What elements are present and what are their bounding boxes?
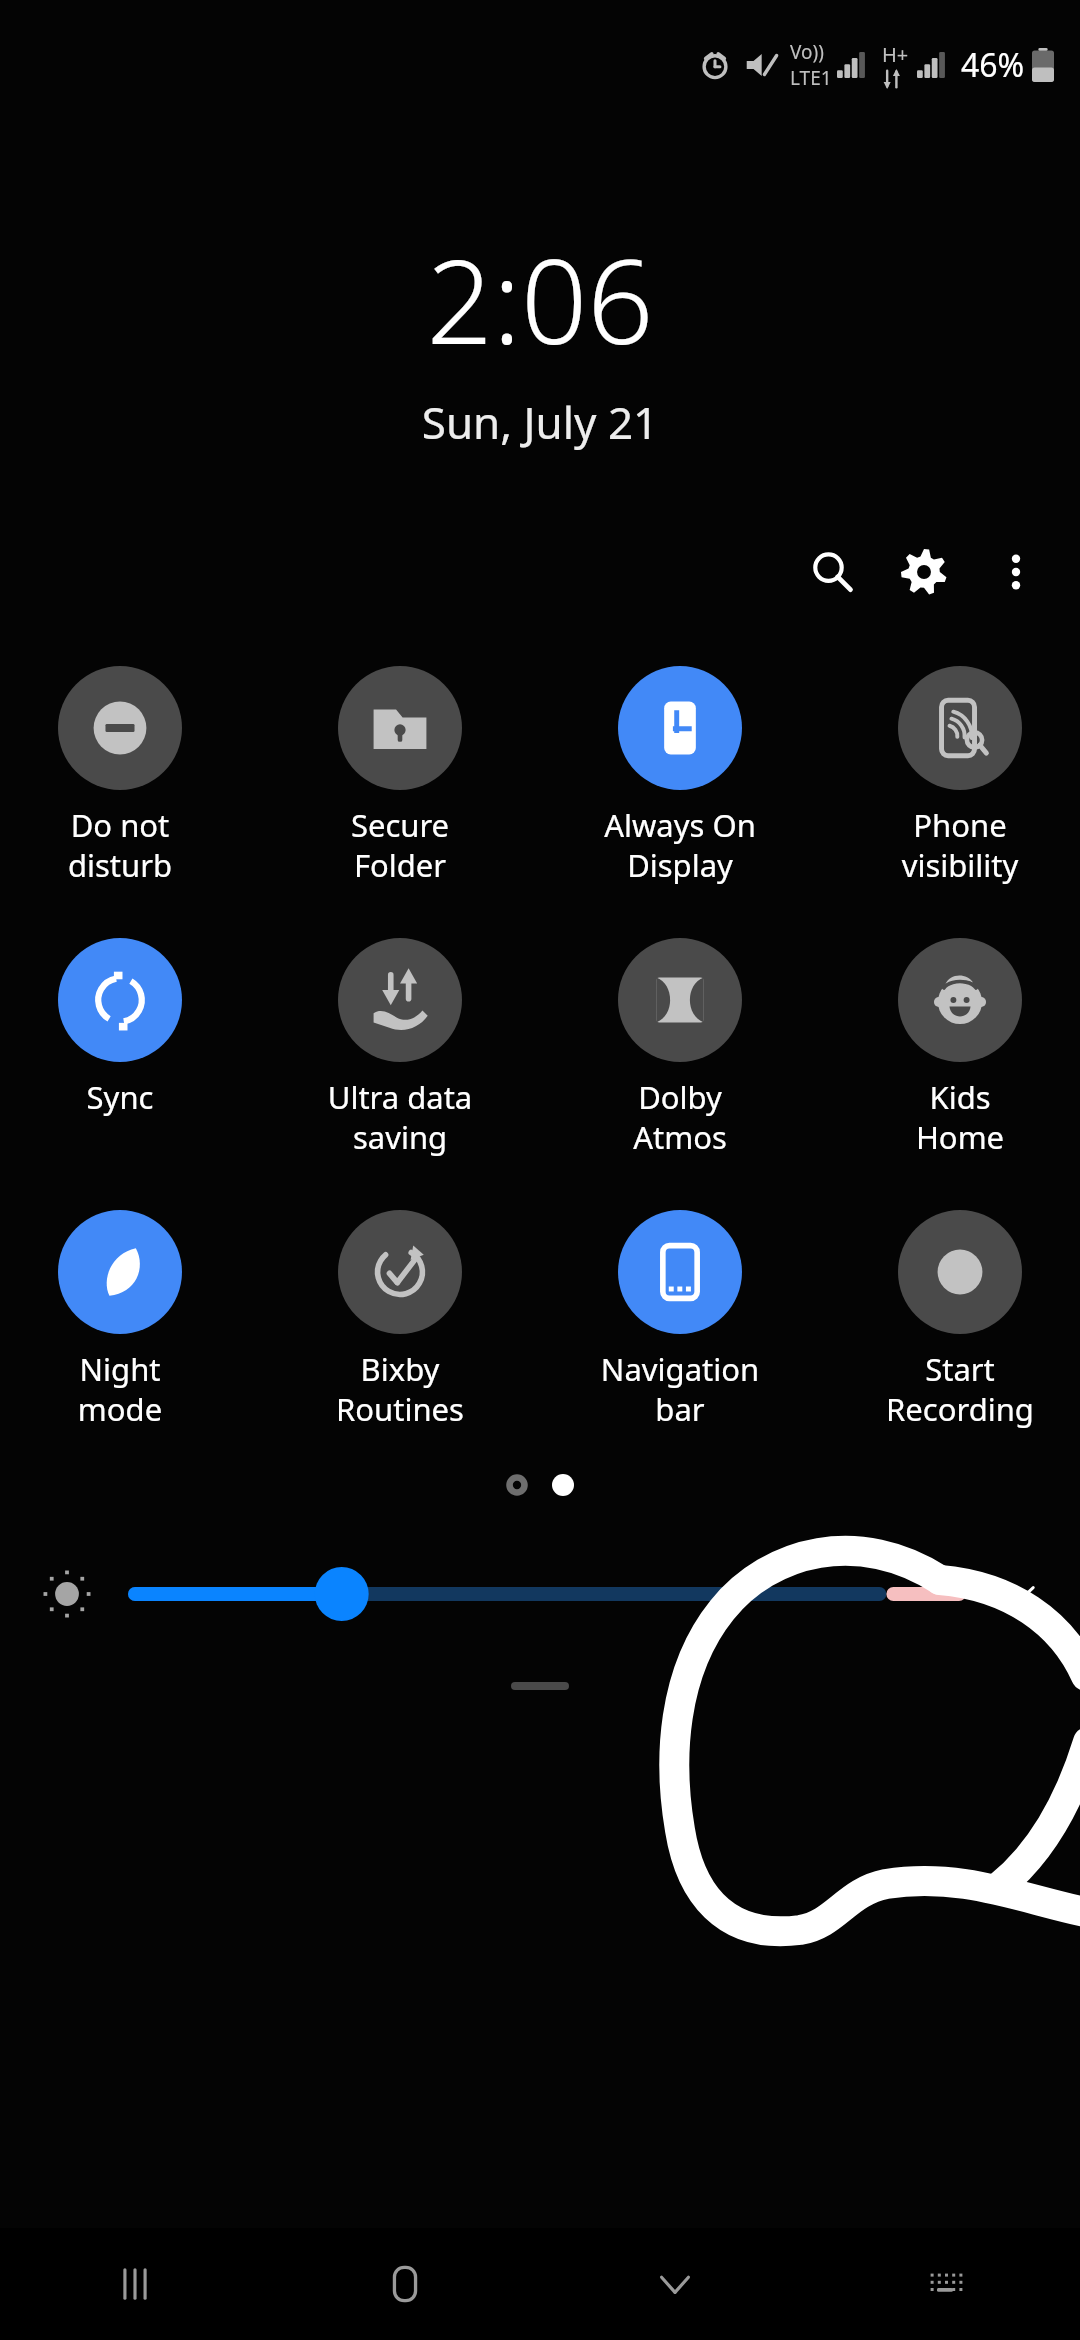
button[interactable]: Settings <box>878 526 970 618</box>
button[interactable]: Hide keyboard <box>540 2228 810 2340</box>
staticText: Always On Display <box>582 804 778 886</box>
button[interactable]: Kids Home <box>862 938 1058 1158</box>
button[interactable]: Recent apps <box>0 2228 270 2340</box>
staticText: Night mode <box>22 1348 218 1430</box>
button[interactable]: Bixby Routines <box>302 1210 498 1430</box>
staticText: Secure Folder <box>302 804 498 886</box>
staticText: H+ <box>882 41 909 68</box>
button[interactable]: Search <box>786 526 878 618</box>
button[interactable]: Night mode <box>22 1210 218 1430</box>
staticText: Vo)) <box>790 39 824 65</box>
staticText: Ultra data saving <box>302 1076 498 1158</box>
button[interactable]: Always On Display <box>582 666 778 886</box>
button[interactable]: Dolby Atmos <box>582 938 778 1158</box>
staticText: 2:06 <box>0 220 1080 378</box>
button[interactable]: Navigation bar <box>582 1210 778 1430</box>
button[interactable]: Ultra data saving <box>302 938 498 1158</box>
button[interactable]: Start Recording <box>862 1210 1058 1430</box>
button[interactable]: Brightness <box>128 1554 966 1634</box>
staticText: Phone visibility <box>862 804 1058 886</box>
staticText: Sun, July 21 <box>0 392 1080 452</box>
button[interactable]: More options <box>970 526 1062 618</box>
staticText: Do not disturb <box>22 804 218 886</box>
staticText: Kids Home <box>862 1076 1058 1158</box>
button[interactable]: Home <box>270 2228 540 2340</box>
staticText: LTE1 <box>790 65 832 91</box>
button[interactable]: Keyboard <box>810 2228 1080 2340</box>
button[interactable]: Expand brightness options <box>982 1558 1054 1630</box>
button[interactable]: Do not disturb <box>22 666 218 886</box>
staticText: Dolby Atmos <box>582 1076 778 1158</box>
staticText: Bixby Routines <box>302 1348 498 1430</box>
button[interactable]: Sync <box>22 938 218 1118</box>
button[interactable]: Secure Folder <box>302 666 498 886</box>
staticText: 46% <box>961 43 1025 87</box>
staticText: Sync <box>22 1076 218 1118</box>
staticText: Start Recording <box>862 1348 1058 1430</box>
button[interactable]: Phone visibility <box>862 666 1058 886</box>
staticText: Navigation bar <box>582 1348 778 1430</box>
